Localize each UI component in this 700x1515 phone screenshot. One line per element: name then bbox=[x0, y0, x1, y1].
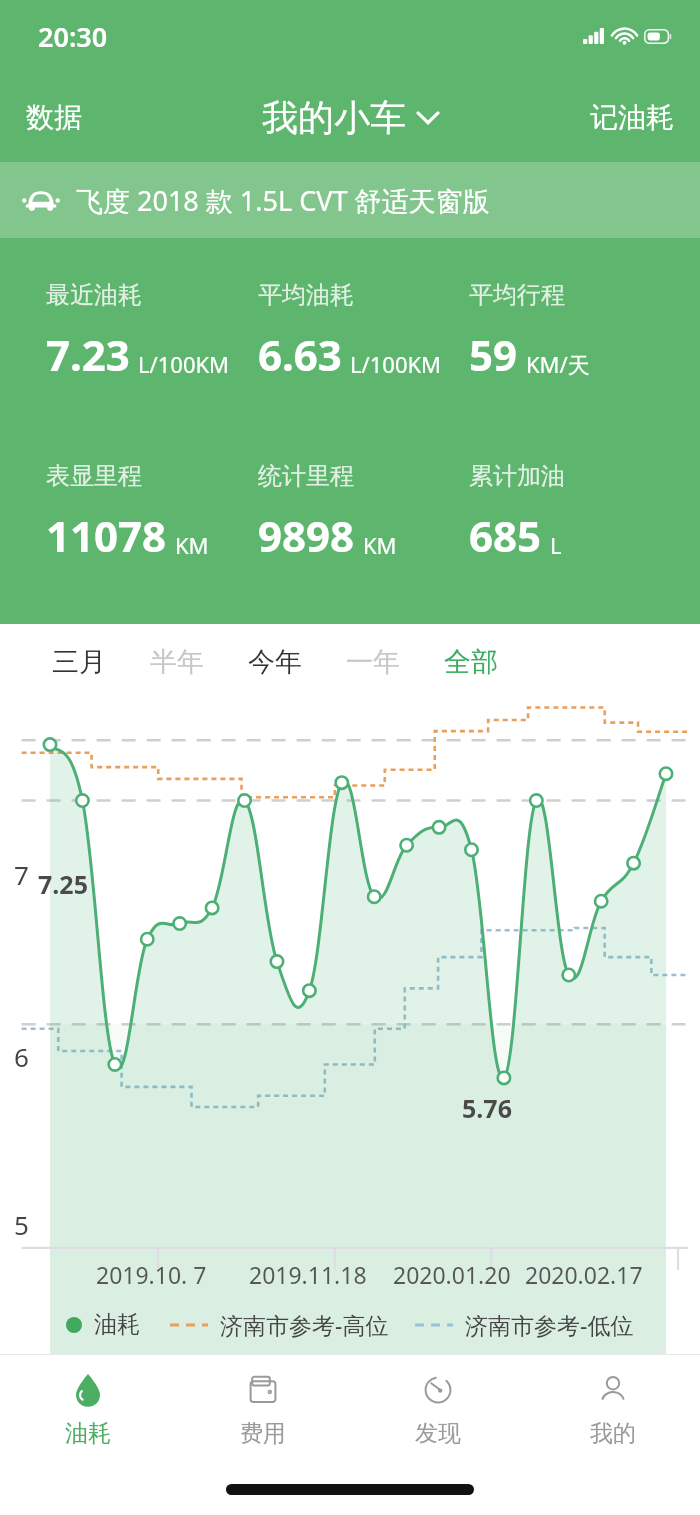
button[interactable]: 记油耗 bbox=[564, 86, 700, 149]
staticText: 济南市参考-高位 bbox=[220, 1309, 389, 1340]
staticText: 2020.02.17 bbox=[525, 1259, 643, 1290]
staticText: L bbox=[550, 530, 562, 560]
staticText: 半年 bbox=[150, 645, 204, 679]
staticText: 我的小车 bbox=[262, 95, 406, 140]
staticText: 最近油耗 bbox=[46, 280, 142, 310]
staticText: 11078 bbox=[46, 507, 167, 564]
staticText: 三月 bbox=[52, 645, 106, 679]
staticText: 6.63 bbox=[258, 326, 342, 383]
staticText: 一年 bbox=[346, 645, 400, 679]
button[interactable]: 发现 bbox=[350, 1355, 525, 1463]
staticText: 表显里程 bbox=[46, 461, 142, 491]
staticText: 我的 bbox=[590, 1419, 636, 1448]
button[interactable]: 费用 bbox=[175, 1355, 350, 1463]
staticText: KM bbox=[363, 530, 397, 560]
staticText: 2019.11.18 bbox=[249, 1259, 367, 1290]
staticText: 20:30 bbox=[38, 18, 108, 55]
button[interactable]: 我的小车 bbox=[246, 85, 454, 150]
staticText: 全部 bbox=[444, 645, 498, 679]
staticText: 5 bbox=[14, 1207, 29, 1242]
staticText: 2020.01.20 bbox=[393, 1259, 511, 1290]
staticText: 累计加油 bbox=[469, 461, 565, 491]
button[interactable]: 半年 bbox=[128, 633, 226, 691]
staticText: 数据 bbox=[26, 100, 82, 135]
staticText: 7 bbox=[14, 857, 29, 892]
button[interactable]: 我的 bbox=[525, 1355, 700, 1463]
staticText: L/100KM bbox=[138, 349, 230, 379]
staticText: 油耗 bbox=[94, 1310, 140, 1339]
staticText: 7.25 bbox=[38, 867, 88, 901]
staticText: L/100KM bbox=[350, 349, 442, 379]
button[interactable]: 三月 bbox=[30, 633, 128, 691]
staticText: 平均行程 bbox=[469, 280, 565, 310]
button[interactable]: 油耗 bbox=[0, 1355, 175, 1463]
staticText: 今年 bbox=[248, 645, 302, 679]
staticText: 平均油耗 bbox=[258, 280, 354, 310]
staticText: 费用 bbox=[240, 1419, 286, 1448]
staticText: 济南市参考-低位 bbox=[465, 1309, 634, 1340]
staticText: 5.76 bbox=[462, 1091, 512, 1125]
button[interactable]: 今年 bbox=[226, 633, 324, 691]
staticText: 油耗 bbox=[65, 1419, 111, 1448]
staticText: 记油耗 bbox=[590, 100, 674, 135]
staticText: 7.23 bbox=[46, 326, 130, 383]
staticText: KM/天 bbox=[526, 349, 590, 379]
staticText: 2019.10. 7 bbox=[96, 1259, 207, 1290]
staticText: 9898 bbox=[258, 507, 355, 564]
staticText: 飞度 2018 款 1.5L CVT 舒适天窗版 bbox=[76, 182, 490, 219]
button[interactable]: 一年 bbox=[324, 633, 422, 691]
button[interactable]: 飞度 2018 款 1.5L CVT 舒适天窗版 bbox=[0, 162, 700, 238]
staticText: KM bbox=[175, 530, 209, 560]
staticText: 发现 bbox=[415, 1419, 461, 1448]
staticText: 6 bbox=[14, 1039, 29, 1074]
staticText: 统计里程 bbox=[258, 461, 354, 491]
staticText: 685 bbox=[469, 507, 542, 564]
button[interactable]: 全部 bbox=[422, 633, 520, 691]
button[interactable]: 数据 bbox=[0, 86, 108, 149]
staticText: 59 bbox=[469, 326, 518, 383]
